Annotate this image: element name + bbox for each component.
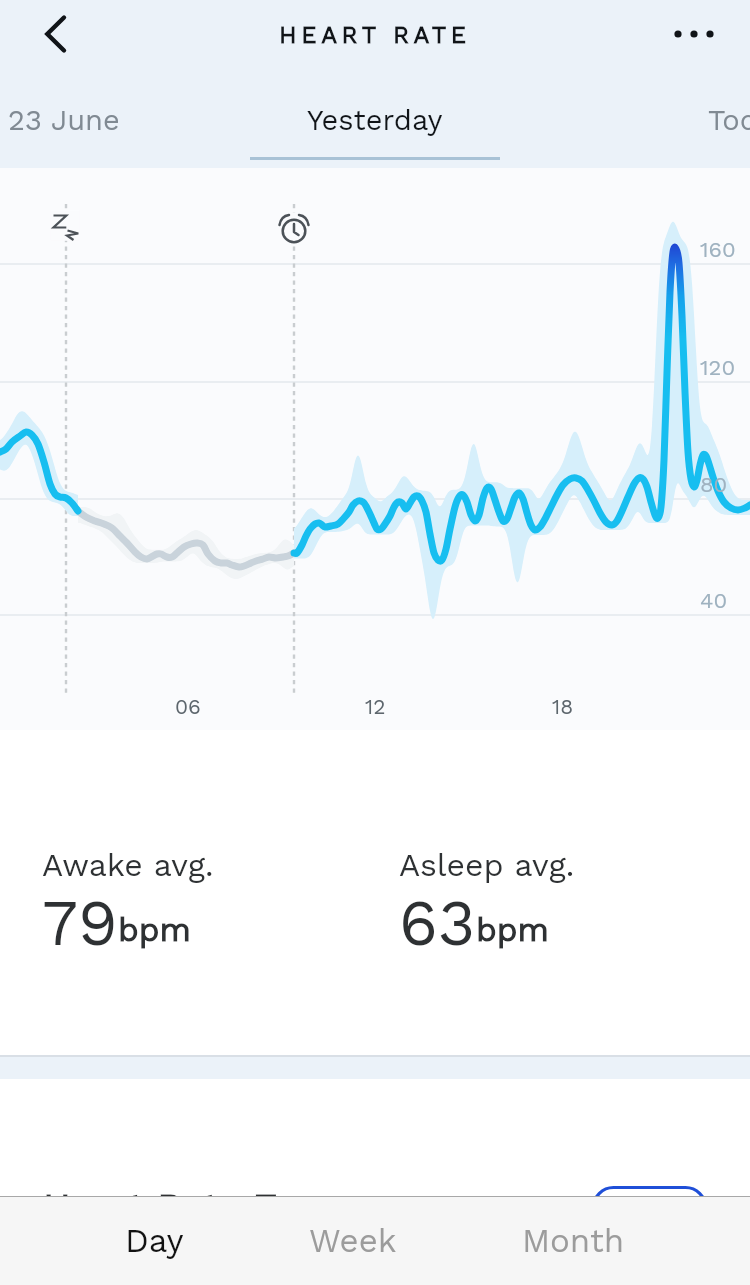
staticText: bpm	[476, 910, 549, 949]
button[interactable]: 23 June	[8, 103, 120, 137]
button[interactable]: Month	[522, 1197, 625, 1285]
staticText: 160	[700, 237, 736, 263]
staticText: Day	[125, 1221, 184, 1260]
button[interactable]: Yesterday	[307, 103, 443, 137]
staticText: Asleep avg.	[399, 846, 575, 884]
staticText: Week	[309, 1221, 397, 1260]
staticText: bpm	[118, 910, 191, 949]
staticText: Month	[522, 1221, 625, 1260]
button[interactable]: Day	[125, 1197, 184, 1285]
staticText: HEART RATE	[279, 21, 471, 49]
staticText: Awake avg.	[42, 846, 214, 884]
staticText: 63	[399, 885, 476, 960]
button[interactable]: Back	[22, 9, 72, 59]
staticText: 120	[700, 355, 736, 381]
staticText: 40	[700, 588, 728, 614]
button[interactable]: Week	[309, 1197, 397, 1285]
button[interactable]: More options	[660, 9, 726, 59]
button[interactable]: Learn more	[592, 1186, 707, 1240]
staticText: 80	[700, 472, 728, 498]
staticText: 12	[365, 694, 386, 719]
staticText: 79	[42, 885, 118, 960]
button[interactable]: Today	[708, 103, 750, 137]
staticText: 18	[552, 694, 574, 719]
staticText: 06	[175, 694, 201, 719]
staticText: Heart Rate Zones	[43, 1186, 366, 1231]
